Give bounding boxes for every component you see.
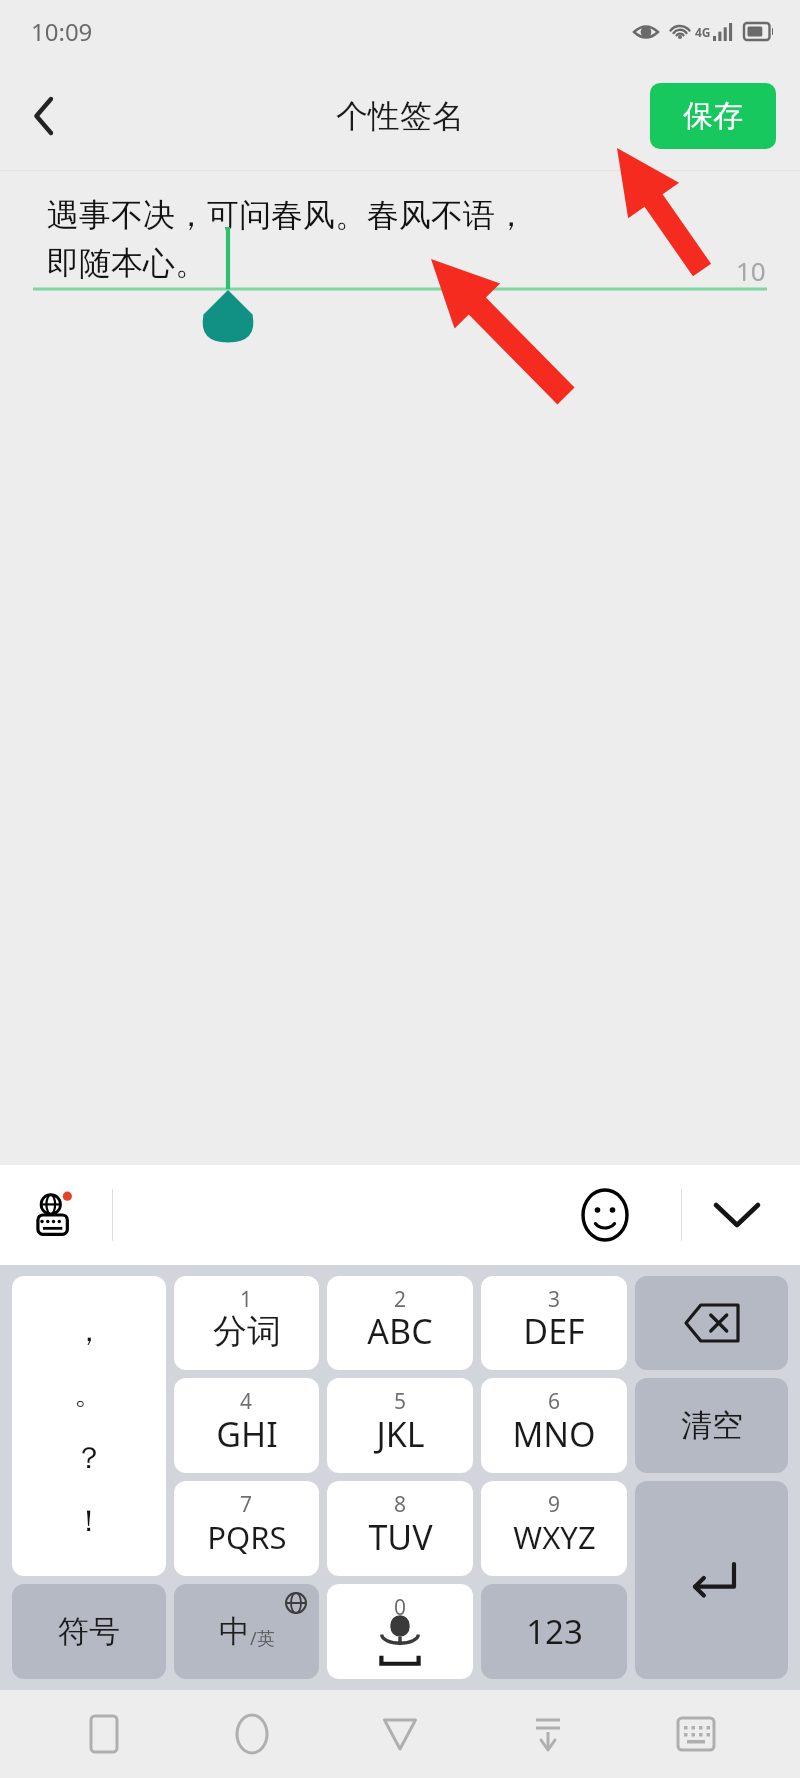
button[interactable]: 6 xyxy=(481,1378,627,1473)
button[interactable]: Home xyxy=(208,1690,296,1778)
staticText: 0 xyxy=(394,1593,407,1622)
staticText: TUV xyxy=(368,1514,433,1560)
staticText: ABC xyxy=(367,1308,433,1354)
staticText: ？ xyxy=(74,1439,104,1477)
button[interactable]: Keyboard xyxy=(652,1690,740,1778)
staticText: 符号 xyxy=(58,1612,120,1651)
staticText: 2 xyxy=(394,1285,407,1314)
staticText: 4 xyxy=(240,1387,253,1416)
staticText: 1 xyxy=(240,1285,253,1314)
button[interactable]: 7 xyxy=(174,1481,319,1576)
staticText: 个性签名 xyxy=(336,96,464,136)
staticText: 中 xyxy=(219,1612,250,1651)
staticText: 10 xyxy=(736,253,766,288)
button[interactable]: 8 xyxy=(327,1481,473,1576)
staticText: 6 xyxy=(548,1387,561,1416)
staticText: 3 xyxy=(548,1285,561,1314)
staticText: 7 xyxy=(240,1490,253,1519)
staticText: /英 xyxy=(250,1626,275,1651)
staticText: 5 xyxy=(394,1387,407,1416)
button[interactable]: Hide keyboard xyxy=(700,1178,774,1252)
button[interactable]: Recent apps xyxy=(60,1690,148,1778)
staticText: 8 xyxy=(394,1490,407,1519)
staticText: 123 xyxy=(526,1609,583,1654)
button[interactable]: 1 xyxy=(174,1276,319,1370)
staticText: GHI xyxy=(216,1411,278,1457)
button[interactable]: 9 xyxy=(481,1481,627,1576)
staticText: JKL xyxy=(376,1411,425,1457)
button[interactable]: Switch input method xyxy=(16,1177,92,1253)
staticText: WXYZ xyxy=(513,1516,596,1558)
staticText: ！ xyxy=(74,1502,104,1540)
staticText: ， xyxy=(74,1312,104,1350)
button[interactable]: 3 xyxy=(481,1276,627,1370)
staticText: MNO xyxy=(512,1411,596,1457)
staticText: 遇事不决，可问春风。春风不语， xyxy=(47,195,527,235)
staticText: DEF xyxy=(523,1308,585,1354)
button[interactable]: ， xyxy=(12,1276,166,1576)
button[interactable]: Back xyxy=(0,62,88,170)
staticText: 保存 xyxy=(683,97,743,135)
staticText: 4G xyxy=(695,24,711,40)
staticText: 。 xyxy=(74,1375,104,1413)
button[interactable]: 5 xyxy=(327,1378,473,1473)
button[interactable]: 保存 xyxy=(650,83,776,149)
button[interactable]: 123 xyxy=(481,1584,627,1679)
button[interactable]: Emoji xyxy=(568,1178,642,1252)
staticText: PQRS xyxy=(207,1516,287,1558)
button[interactable]: Hide keyboard xyxy=(504,1690,592,1778)
button[interactable]: 4 xyxy=(174,1378,319,1473)
button[interactable]: Back xyxy=(356,1690,444,1778)
staticText: 即随本心。 xyxy=(47,243,207,283)
button[interactable]: 0 xyxy=(327,1584,473,1679)
button[interactable] xyxy=(635,1276,788,1370)
staticText: 分词 xyxy=(213,1310,281,1353)
button[interactable]: 中 xyxy=(174,1584,319,1679)
button[interactable] xyxy=(635,1481,788,1679)
button[interactable]: 清空 xyxy=(635,1378,788,1473)
button[interactable]: 符号 xyxy=(12,1584,166,1679)
staticText: 10:09 xyxy=(31,15,93,48)
staticText: 清空 xyxy=(681,1406,743,1445)
button[interactable]: 2 xyxy=(327,1276,473,1370)
staticText: 9 xyxy=(548,1490,561,1519)
